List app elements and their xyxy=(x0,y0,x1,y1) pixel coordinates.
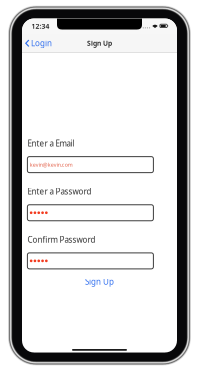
button[interactable] xyxy=(27,253,153,269)
staticText: kevin@kevin.com xyxy=(30,161,73,168)
button[interactable]: Sign Up xyxy=(84,275,115,288)
staticText: Confirm Password xyxy=(27,234,95,245)
staticText: Sign Up xyxy=(87,39,112,48)
staticText: Login xyxy=(31,38,52,48)
staticText: Sign Up xyxy=(85,276,114,287)
button[interactable]: Login xyxy=(22,38,52,48)
staticText: Enter a Email xyxy=(27,138,74,149)
button[interactable]: kevin@kevin.com xyxy=(27,157,153,173)
button[interactable] xyxy=(27,205,153,221)
staticText: 12:34 xyxy=(32,22,50,31)
staticText: Enter a Password xyxy=(27,186,91,197)
